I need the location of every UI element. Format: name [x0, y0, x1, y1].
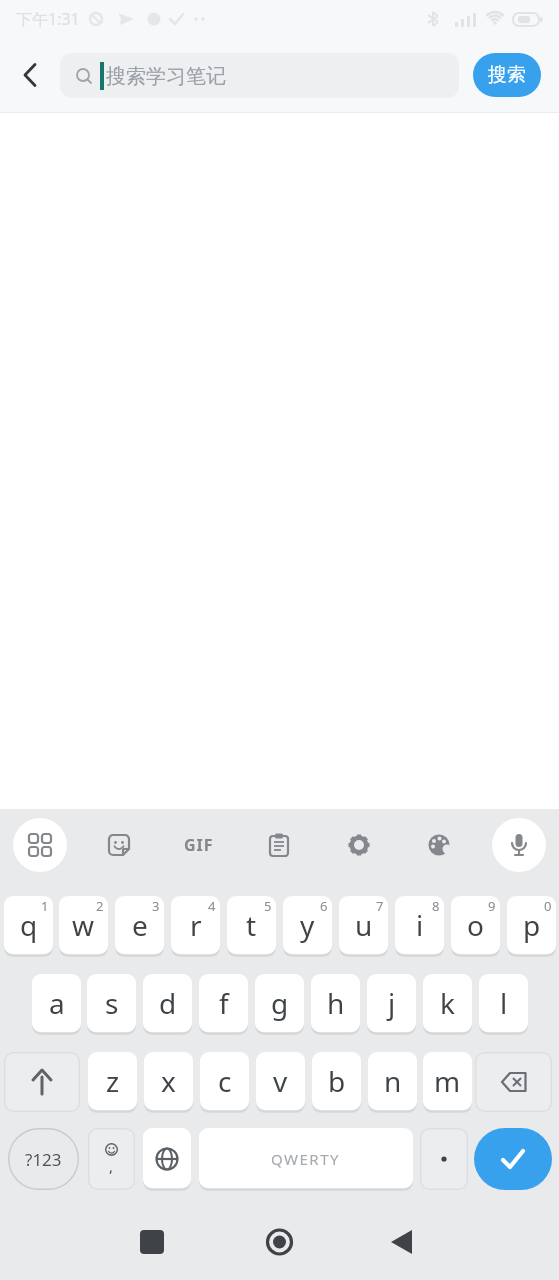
staticText: 下午1:31 — [16, 8, 80, 30]
staticText: a — [49, 984, 65, 1022]
button[interactable]: o — [451, 896, 500, 956]
staticText: c — [218, 1062, 232, 1100]
button[interactable]: v — [256, 1052, 305, 1112]
button[interactable]: q — [4, 896, 53, 956]
staticText: 搜索 — [488, 63, 526, 87]
button[interactable]: p — [507, 896, 556, 956]
button[interactable]: m — [423, 1052, 472, 1112]
button[interactable]: l — [479, 974, 528, 1034]
staticText: 0 — [544, 897, 552, 915]
button[interactable] — [4, 1052, 80, 1112]
staticText: 5 — [264, 897, 272, 915]
staticText: 2 — [96, 897, 104, 915]
staticText: k — [440, 984, 455, 1022]
staticText: n — [384, 1062, 402, 1100]
staticText: y — [300, 906, 315, 944]
staticText: ?123 — [25, 1148, 62, 1171]
button[interactable]: f — [199, 974, 248, 1034]
button[interactable]: j — [367, 974, 416, 1034]
button[interactable] — [239, 818, 319, 872]
button[interactable]: ?123 — [8, 1128, 79, 1190]
staticText: , — [109, 1156, 114, 1176]
staticText: 8 — [432, 897, 440, 915]
button[interactable]: a — [32, 974, 81, 1034]
button[interactable]: e — [115, 896, 164, 956]
staticText: QWERTY — [271, 1149, 341, 1169]
staticText: t — [246, 906, 257, 944]
button[interactable]: u — [339, 896, 388, 956]
staticText: r — [190, 906, 202, 944]
button[interactable] — [475, 1052, 552, 1112]
button[interactable]: z — [88, 1052, 137, 1112]
staticText: 1 — [41, 897, 49, 915]
staticText: w — [72, 906, 95, 944]
button[interactable] — [378, 1225, 426, 1263]
button[interactable]: 搜索 — [473, 53, 541, 97]
staticText: g — [271, 984, 289, 1022]
button[interactable]: QWERTY — [199, 1128, 413, 1190]
staticText: p — [523, 906, 541, 944]
button[interactable]: w — [59, 896, 108, 956]
button[interactable] — [79, 818, 159, 872]
staticText: 6 — [320, 897, 328, 915]
button[interactable]: h — [311, 974, 360, 1034]
button[interactable] — [479, 818, 559, 872]
button[interactable] — [14, 53, 46, 97]
button[interactable]: i — [395, 896, 444, 956]
button[interactable] — [255, 1225, 303, 1263]
staticText: 3 — [152, 897, 160, 915]
staticText: e — [132, 906, 148, 944]
staticText: q — [20, 906, 38, 944]
staticText: GIF — [184, 834, 214, 856]
button[interactable] — [143, 1128, 191, 1190]
button[interactable]: n — [368, 1052, 417, 1112]
button[interactable]: y — [283, 896, 332, 956]
button[interactable] — [0, 818, 79, 872]
staticText: z — [106, 1062, 120, 1100]
staticText: 4 — [208, 897, 216, 915]
button[interactable]: g — [255, 974, 304, 1034]
button[interactable]: d — [143, 974, 192, 1034]
staticText: i — [416, 906, 424, 944]
staticText: 9 — [488, 897, 496, 915]
staticText: o — [467, 906, 484, 944]
button[interactable]: t — [227, 896, 276, 956]
button[interactable]: c — [200, 1052, 249, 1112]
button[interactable]: s — [87, 974, 136, 1034]
staticText: l — [500, 984, 508, 1022]
button[interactable] — [128, 1225, 176, 1263]
staticText: 搜索学习笔记 — [106, 64, 226, 89]
staticText: v — [273, 1062, 288, 1100]
button[interactable] — [474, 1128, 552, 1190]
staticText: s — [105, 984, 119, 1022]
button[interactable]: r — [171, 896, 220, 956]
staticText: f — [219, 984, 229, 1022]
button[interactable] — [319, 818, 399, 872]
button[interactable] — [399, 818, 479, 872]
staticText: b — [328, 1062, 346, 1100]
button[interactable]: k — [423, 974, 472, 1034]
staticText: m — [434, 1062, 461, 1100]
staticText: u — [355, 906, 373, 944]
staticText: d — [159, 984, 177, 1022]
button[interactable]: , — [88, 1128, 135, 1190]
staticText: j — [388, 984, 396, 1022]
staticText: 7 — [376, 897, 384, 915]
staticText: x — [161, 1062, 176, 1100]
button[interactable]: 搜索学习笔记 — [60, 53, 459, 98]
button[interactable]: b — [312, 1052, 361, 1112]
button[interactable] — [420, 1128, 468, 1190]
button[interactable]: GIF — [159, 818, 239, 872]
button[interactable]: x — [144, 1052, 193, 1112]
staticText: h — [327, 984, 345, 1022]
